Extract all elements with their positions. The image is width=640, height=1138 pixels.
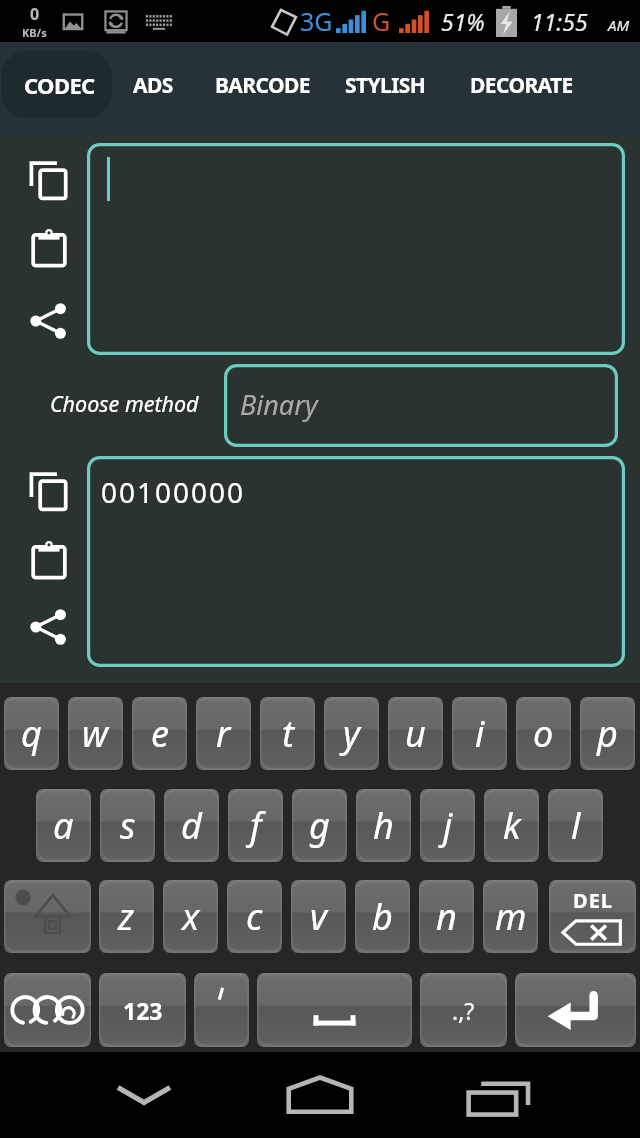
- staticText: r: [216, 709, 231, 758]
- button[interactable]: d: [164, 789, 219, 862]
- staticText: 0: [30, 3, 40, 25]
- staticText: a: [53, 801, 74, 850]
- button[interactable]: j: [420, 789, 475, 862]
- button[interactable]: g: [292, 789, 347, 862]
- button[interactable]: z: [99, 880, 154, 953]
- button[interactable]: Paste: [18, 217, 80, 279]
- staticText: CODEC: [24, 70, 95, 100]
- staticText: n: [436, 892, 457, 941]
- staticText: Choose method: [50, 389, 199, 418]
- staticText: d: [181, 801, 202, 850]
- button[interactable]: ADS: [123, 52, 183, 118]
- button[interactable]: a: [36, 789, 91, 862]
- staticText: k: [503, 801, 521, 850]
- button[interactable]: STYLISH: [335, 52, 436, 118]
- button[interactable]: Delete: [549, 880, 636, 953]
- staticText: y: [343, 709, 360, 758]
- staticText: c: [246, 892, 263, 941]
- button[interactable]: k: [484, 789, 539, 862]
- staticText: u: [405, 709, 426, 758]
- button[interactable]: 123: [99, 973, 186, 1047]
- button[interactable]: Copy: [18, 459, 80, 521]
- staticText: ADS: [133, 71, 173, 100]
- button[interactable]: u: [388, 697, 443, 770]
- staticText: 3G: [300, 4, 333, 38]
- button[interactable]: h: [356, 789, 411, 862]
- staticText: BARCODE: [215, 71, 310, 100]
- staticText: G: [372, 4, 391, 38]
- staticText: 00100000: [101, 473, 246, 511]
- staticText: 11:55: [531, 6, 588, 37]
- staticText: p: [597, 709, 618, 758]
- button[interactable]: Share: [18, 290, 80, 352]
- button[interactable]: q: [4, 697, 59, 770]
- button[interactable]: DECORATE: [460, 52, 583, 118]
- staticText: DEL: [573, 887, 614, 914]
- button[interactable]: s: [100, 789, 155, 862]
- staticText: l: [571, 801, 581, 850]
- button[interactable]: Paste: [18, 529, 80, 591]
- button[interactable]: Choose method: [44, 385, 205, 421]
- button[interactable]: w: [68, 697, 123, 770]
- button[interactable]: 00100000: [87, 456, 625, 667]
- button[interactable]: v: [291, 880, 346, 953]
- button[interactable]: Copy: [18, 148, 80, 210]
- button[interactable]: o: [516, 697, 571, 770]
- button[interactable]: p: [580, 697, 635, 770]
- button[interactable]: Space: [257, 973, 412, 1047]
- button[interactable]: Hide keyboard: [94, 1059, 194, 1131]
- staticText: m: [495, 892, 527, 941]
- button[interactable]: y: [324, 697, 379, 770]
- button[interactable]: Shift: [4, 880, 91, 953]
- staticText: Binary: [240, 386, 318, 423]
- button[interactable]: Enter: [515, 973, 636, 1047]
- staticText: e: [151, 709, 169, 758]
- button[interactable]: [87, 143, 625, 355]
- button[interactable]: Language: [4, 973, 91, 1047]
- button[interactable]: Home: [270, 1059, 370, 1131]
- button[interactable]: x: [163, 880, 218, 953]
- staticText: KB/s: [22, 25, 47, 40]
- staticText: i: [475, 709, 485, 758]
- staticText: b: [372, 892, 393, 941]
- button[interactable]: Recents: [449, 1063, 549, 1135]
- staticText: o: [533, 709, 554, 758]
- staticText: v: [310, 892, 327, 941]
- staticText: q: [21, 709, 42, 758]
- button[interactable]: Binary: [224, 364, 618, 447]
- button[interactable]: t: [260, 697, 315, 770]
- staticText: 51%: [441, 6, 485, 37]
- button[interactable]: Apostrophe: [194, 973, 249, 1047]
- button[interactable]: b: [355, 880, 410, 953]
- button[interactable]: e: [132, 697, 187, 770]
- staticText: DECORATE: [470, 71, 573, 100]
- staticText: STYLISH: [345, 71, 426, 100]
- button[interactable]: m: [483, 880, 538, 953]
- button[interactable]: BARCODE: [205, 52, 320, 118]
- button[interactable]: r: [196, 697, 251, 770]
- staticText: x: [182, 892, 200, 941]
- button[interactable]: c: [227, 880, 282, 953]
- staticText: f: [250, 801, 262, 850]
- staticText: AM: [608, 15, 630, 35]
- staticText: t: [282, 709, 294, 758]
- button[interactable]: l: [548, 789, 603, 862]
- button[interactable]: .,?: [420, 973, 507, 1047]
- button[interactable]: Share: [18, 596, 80, 658]
- staticText: z: [118, 892, 135, 941]
- button[interactable]: CODEC: [1, 51, 112, 118]
- staticText: .,?: [452, 995, 475, 1026]
- button[interactable]: i: [452, 697, 507, 770]
- staticText: j: [443, 801, 453, 850]
- button[interactable]: f: [228, 789, 283, 862]
- button[interactable]: n: [419, 880, 474, 953]
- staticText: h: [373, 801, 394, 850]
- staticText: s: [120, 801, 136, 850]
- staticText: 123: [123, 995, 163, 1026]
- staticText: g: [309, 801, 330, 850]
- staticText: w: [82, 709, 109, 758]
